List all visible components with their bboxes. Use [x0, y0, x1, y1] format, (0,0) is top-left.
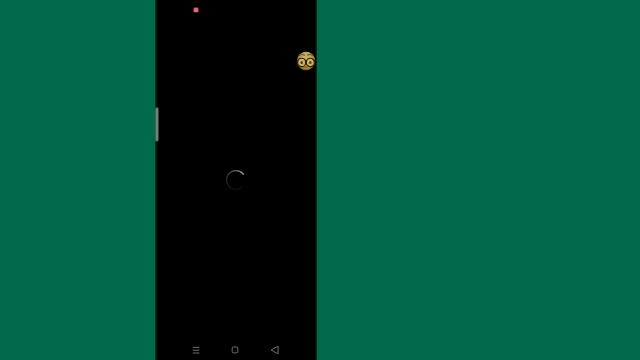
button[interactable]: Back [265, 343, 279, 357]
button[interactable]: Nerd face emoji [296, 51, 316, 71]
button[interactable]: Recent apps [189, 343, 203, 357]
button[interactable]: Home [228, 343, 242, 357]
